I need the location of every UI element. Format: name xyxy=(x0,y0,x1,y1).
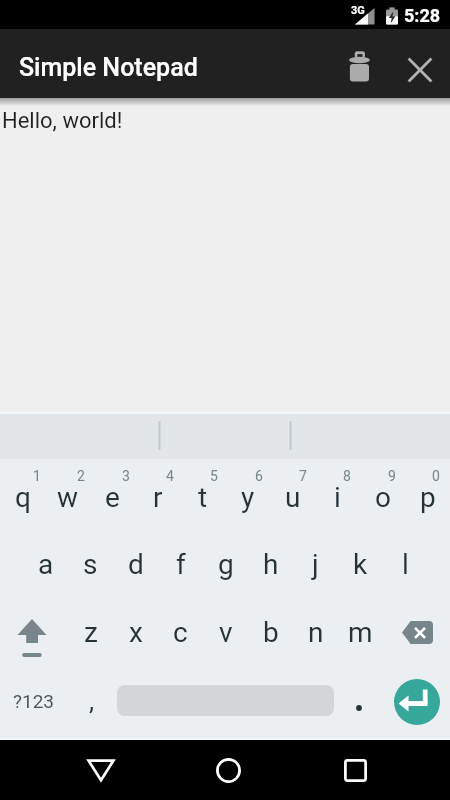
staticText: h xyxy=(263,548,279,581)
staticText: 4 xyxy=(166,468,174,484)
staticText: p xyxy=(420,481,436,514)
button[interactable]: i xyxy=(315,464,360,530)
button[interactable]: d xyxy=(113,531,158,597)
staticText: 3G xyxy=(351,4,365,17)
staticText: 1 xyxy=(33,468,41,484)
staticText: 5:28 xyxy=(404,5,441,26)
staticText: i xyxy=(334,481,341,514)
staticText: x xyxy=(129,616,143,649)
staticText: e xyxy=(105,481,120,514)
button[interactable] xyxy=(0,668,66,734)
staticText: 7 xyxy=(299,468,307,484)
button[interactable]: j xyxy=(293,531,338,597)
button[interactable]: q xyxy=(0,464,45,530)
staticText: 2 xyxy=(77,468,85,484)
button[interactable]: e xyxy=(90,464,135,530)
staticText: d xyxy=(128,548,144,581)
button[interactable]: o xyxy=(360,464,405,530)
staticText: g xyxy=(218,548,234,581)
staticText: s xyxy=(83,548,98,581)
staticText: Simple Notepad xyxy=(19,53,198,82)
staticText: z xyxy=(84,616,98,649)
button[interactable] xyxy=(0,599,66,665)
button[interactable] xyxy=(320,740,390,800)
staticText: 3 xyxy=(122,468,130,484)
staticText: q xyxy=(15,481,31,514)
button[interactable] xyxy=(390,35,450,104)
button[interactable]: , xyxy=(69,668,114,734)
button[interactable]: n xyxy=(293,599,338,665)
button[interactable]: f xyxy=(158,531,203,597)
staticText: v xyxy=(219,616,233,649)
staticText: Hello, world! xyxy=(2,108,123,134)
button[interactable]: s xyxy=(68,531,113,597)
button[interactable]: x xyxy=(113,599,158,665)
button[interactable] xyxy=(290,412,450,459)
button[interactable]: c xyxy=(158,599,203,665)
staticText: n xyxy=(308,616,324,649)
button[interactable]: r xyxy=(135,464,180,530)
staticText: f xyxy=(176,548,186,581)
button[interactable] xyxy=(333,32,385,101)
button[interactable] xyxy=(337,668,382,734)
staticText: t xyxy=(198,481,208,514)
staticText: 9 xyxy=(388,468,396,484)
staticText: a xyxy=(38,548,54,581)
button[interactable] xyxy=(193,740,263,800)
button[interactable] xyxy=(394,679,440,725)
staticText: w xyxy=(57,481,79,514)
button[interactable]: k xyxy=(338,531,383,597)
staticText: ?123 xyxy=(13,690,55,712)
staticText: r xyxy=(153,481,163,514)
staticText: c xyxy=(173,616,188,649)
staticText: 6 xyxy=(255,468,263,484)
button[interactable]: t xyxy=(180,464,225,530)
staticText: b xyxy=(263,616,279,649)
staticText: 0 xyxy=(432,468,440,484)
button[interactable]: h xyxy=(248,531,293,597)
staticText: m xyxy=(348,616,373,649)
button[interactable]: l xyxy=(383,531,428,597)
staticText: l xyxy=(402,548,409,581)
button[interactable] xyxy=(159,412,290,459)
staticText: 8 xyxy=(343,468,351,484)
staticText: o xyxy=(375,481,391,514)
staticText: k xyxy=(353,548,368,581)
button[interactable]: v xyxy=(203,599,248,665)
button[interactable]: u xyxy=(270,464,315,530)
button[interactable]: a xyxy=(23,531,68,597)
staticText: y xyxy=(241,481,255,514)
staticText: j xyxy=(312,548,319,581)
button[interactable]: b xyxy=(248,599,293,665)
staticText: u xyxy=(285,481,301,514)
button[interactable] xyxy=(66,740,136,800)
button[interactable]: w xyxy=(45,464,90,530)
button[interactable]: g xyxy=(203,531,248,597)
button[interactable]: p xyxy=(405,464,450,530)
button[interactable]: y xyxy=(225,464,270,530)
button[interactable]: m xyxy=(338,599,383,665)
button[interactable] xyxy=(0,412,159,459)
staticText: , xyxy=(89,686,95,716)
button[interactable]: z xyxy=(68,599,113,665)
button[interactable] xyxy=(384,599,450,665)
staticText: 5 xyxy=(210,468,218,484)
